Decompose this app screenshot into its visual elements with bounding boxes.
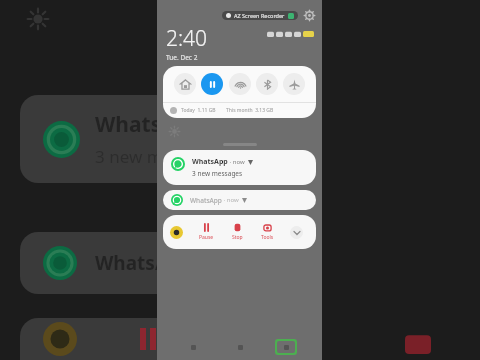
staticText: 3 new messages [192, 169, 243, 178]
staticText: Tue, Dec 2 [166, 53, 198, 60]
staticText: WhatsApp [192, 157, 228, 167]
button[interactable]: Back [277, 341, 295, 353]
button[interactable]: Quick setting [256, 73, 278, 95]
staticText: 3 new m [95, 145, 163, 168]
button[interactable]: WhatsApp [163, 150, 316, 185]
staticText: WhatsApp [190, 196, 222, 205]
staticText: Stop [232, 234, 243, 241]
staticText: Tools [261, 234, 274, 241]
button[interactable]: Quick setting [229, 73, 251, 95]
button[interactable]: Pause recording [201, 73, 223, 95]
button[interactable]: Recents [182, 339, 204, 355]
staticText: Pause [199, 234, 214, 241]
button[interactable]: WhatsApp [20, 95, 240, 183]
staticText: Today 1.11 GB This month 3.13 GB [181, 107, 274, 114]
button[interactable]: AZ Screen Recorder [163, 215, 316, 249]
staticText: · now [228, 158, 245, 166]
button[interactable]: Quick setting [283, 73, 305, 95]
button[interactable]: WhatsApp [20, 232, 240, 294]
button[interactable]: Today 1.11 GB This month 3.13 GB [170, 107, 309, 114]
button[interactable]: Collapse [290, 226, 303, 239]
button[interactable]: Pause [197, 223, 216, 241]
button[interactable] [20, 318, 240, 360]
staticText: AZ Screen Recorder [234, 12, 285, 19]
staticText: WhatsApp [95, 110, 203, 139]
button[interactable]: WhatsApp [163, 190, 316, 210]
button[interactable]: Stop [230, 223, 245, 241]
staticText: · now [222, 196, 239, 204]
button[interactable]: Quick setting [174, 73, 196, 95]
staticText: WhatsApp [95, 250, 193, 276]
staticText: 2:40 [166, 24, 208, 53]
button[interactable]: Settings [304, 10, 315, 21]
button[interactable]: Home [229, 339, 251, 355]
other: AZ Screen Recorder [170, 226, 183, 239]
button[interactable]: Tools [259, 223, 276, 241]
button[interactable]: AZ Screen Recorder [226, 12, 294, 19]
